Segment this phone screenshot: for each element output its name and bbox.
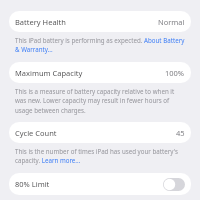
staticText: Battery Health <box>15 17 66 27</box>
staticText: 80% Limit <box>15 179 50 189</box>
staticText: This is the number of times iPad has use… <box>15 147 186 165</box>
staticText: 45 <box>176 128 185 138</box>
button[interactable]: Cycle Count <box>9 122 191 143</box>
button[interactable]: Battery Health <box>9 11 191 32</box>
staticText: Cycle Count <box>15 128 57 138</box>
staticText: Normal <box>158 17 185 27</box>
staticText: Maximum Capacity <box>15 68 83 78</box>
button[interactable]: 80% Limit toggle <box>163 178 185 191</box>
button[interactable]: Maximum Capacity <box>9 62 191 83</box>
button[interactable]: 80% Limit <box>9 173 191 195</box>
staticText: 100% <box>165 68 185 78</box>
staticText: This is a measure of battery capacity re… <box>15 87 186 115</box>
staticText: This iPad battery is performing as expec… <box>15 36 186 54</box>
